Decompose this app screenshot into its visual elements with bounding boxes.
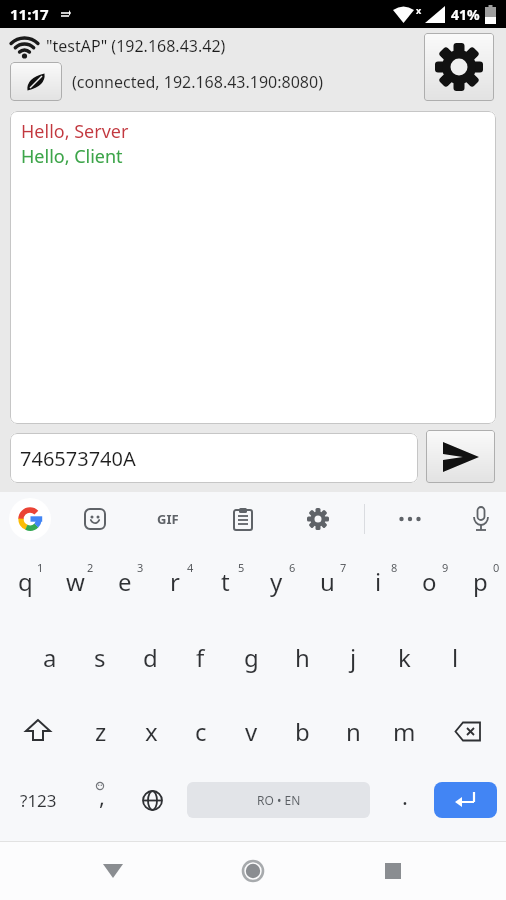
button[interactable] [221,497,265,541]
button[interactable]: o [404,553,455,609]
staticText: 5 [238,560,245,575]
staticText: RO • EN [257,792,301,808]
staticText: i [375,565,382,598]
button[interactable] [73,497,117,541]
staticText: 4 [187,560,194,575]
button[interactable]: GIF [146,497,190,541]
button[interactable]: j [328,629,379,685]
button[interactable]: a [25,629,75,685]
button[interactable]: e [100,553,150,609]
staticText: ?123 [20,789,57,812]
staticText: o [422,565,437,598]
staticText: , [99,781,105,811]
staticText: 3 [137,560,144,575]
button[interactable]: v [226,703,277,759]
button[interactable] [296,497,340,541]
staticText: p [473,565,488,598]
staticText: Hello, Client [21,144,123,169]
staticText: m [393,715,416,748]
staticText: 41% [451,5,480,24]
button[interactable]: k [379,629,430,685]
staticText: GIF [157,510,179,528]
staticText: s [94,641,106,674]
staticText: 8 [391,560,398,575]
button[interactable] [424,33,494,101]
button[interactable]: h [277,629,328,685]
staticText: j [350,641,357,674]
staticText: x [416,4,422,16]
staticText: n [346,715,361,748]
button[interactable] [430,772,506,828]
button[interactable]: i [353,553,404,609]
staticText: e [118,565,132,598]
staticText: 1 [37,560,44,575]
staticText: l [452,641,459,674]
button[interactable]: t [200,553,251,609]
button[interactable]: y [251,553,302,609]
button[interactable]: d [125,629,175,685]
button[interactable] [388,497,432,541]
staticText: w [66,565,85,598]
staticText: t [221,565,230,598]
button[interactable]: x [126,703,176,759]
button[interactable]: m [379,703,430,759]
staticText: b [295,715,310,748]
button[interactable]: z [76,703,126,759]
button[interactable]: p [455,553,506,609]
staticText: 2 [87,560,94,575]
button[interactable]: RO • EN [178,772,379,828]
button[interactable] [459,497,503,541]
staticText: . [402,781,408,811]
button[interactable]: b [277,703,328,759]
button[interactable]: s [75,629,125,685]
staticText: f [196,641,205,674]
staticText: g [244,641,259,674]
staticText: 6 [289,560,296,575]
staticText: (connected, 192.168.43.190:8080) [72,71,323,93]
staticText: 11:17 [10,4,49,24]
button[interactable]: g [226,629,277,685]
staticText: 0 [493,560,500,575]
button[interactable]: u [302,553,353,609]
button[interactable] [93,841,133,900]
button[interactable]: . [379,772,430,828]
button[interactable]: , [76,772,127,828]
button[interactable] [8,497,52,541]
button[interactable] [430,703,506,759]
staticText: d [143,641,158,674]
button[interactable] [127,772,178,828]
staticText: 9 [442,560,449,575]
button[interactable]: n [328,703,379,759]
staticText: Hello, Server [21,119,129,144]
staticText: 746573740A [20,445,136,472]
staticText: y [270,565,283,598]
staticText: x [145,715,158,748]
button[interactable]: w [50,553,100,609]
staticText: v [245,715,258,748]
staticText: h [295,641,310,674]
button[interactable] [0,703,76,759]
button[interactable]: q [0,553,50,609]
button[interactable]: l [430,629,481,685]
staticText: c [195,715,207,748]
button[interactable] [233,841,273,900]
staticText: a [43,641,57,674]
staticText: "testAP" (192.168.43.42) [46,35,226,57]
button[interactable] [373,841,413,900]
staticText: u [320,565,335,598]
staticText: 7 [340,560,347,575]
button[interactable]: r [150,553,200,609]
button[interactable] [426,430,495,483]
staticText: k [398,641,411,674]
button[interactable]: f [175,629,226,685]
button[interactable]: ?123 [0,772,76,828]
button[interactable] [10,62,62,101]
staticText: q [18,565,33,598]
staticText: r [170,565,180,598]
button[interactable]: c [176,703,226,759]
staticText: z [95,715,107,748]
button[interactable]: 746573740A [10,433,418,483]
